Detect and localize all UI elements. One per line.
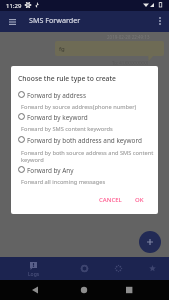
button[interactable] bbox=[11, 134, 158, 154]
button[interactable] bbox=[11, 111, 158, 131]
staticText: Choose the rule type to create bbox=[18, 74, 116, 83]
staticText: Forward by both address and keyword bbox=[27, 136, 142, 145]
button[interactable] bbox=[11, 89, 158, 109]
button[interactable]: CANCEL bbox=[94, 192, 127, 208]
staticText: Logs bbox=[28, 271, 40, 278]
staticText: Forward by keyword bbox=[27, 113, 88, 122]
staticText: SMS Forwarder bbox=[29, 15, 81, 25]
button[interactable] bbox=[11, 164, 158, 184]
staticText: Forward all incoming messages bbox=[21, 178, 157, 186]
button[interactable]: OK bbox=[130, 192, 149, 208]
staticText: Forward by address bbox=[27, 91, 86, 100]
staticText: fg bbox=[59, 45, 65, 53]
staticText: 2019-02-28 22:49:13 bbox=[107, 34, 150, 40]
button[interactable]: Open navigation drawer bbox=[4, 14, 20, 30]
button[interactable]: Rules bbox=[101, 257, 135, 280]
button[interactable]: Logs bbox=[0, 257, 67, 280]
button[interactable]: Favourites bbox=[135, 257, 169, 280]
staticText: CANCEL bbox=[99, 196, 122, 204]
staticText: 11:29 bbox=[6, 2, 22, 10]
staticText: Forward by both source address and SMS c… bbox=[21, 149, 157, 164]
button[interactable]: More options bbox=[153, 14, 167, 28]
staticText: Forward by source address(phone number) bbox=[21, 103, 157, 111]
button[interactable]: Add rule bbox=[139, 231, 161, 253]
staticText: Forward by SMS content keywords bbox=[21, 125, 157, 133]
button[interactable]: Settings bbox=[67, 257, 101, 280]
staticText: Forward by Any bbox=[27, 166, 74, 175]
staticText: OK bbox=[135, 196, 144, 204]
